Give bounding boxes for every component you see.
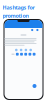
button[interactable]: Share <box>16 53 19 56</box>
button[interactable]: Share <box>20 53 23 56</box>
button[interactable]: Share <box>24 53 27 56</box>
button[interactable]: Add <box>32 84 36 88</box>
button[interactable]: Tag <box>29 49 32 51</box>
button[interactable]: Share <box>28 53 31 56</box>
button[interactable]: Search <box>31 29 33 31</box>
staticText: Hashtags for <box>2 4 34 11</box>
staticText: promotion <box>2 12 28 19</box>
button[interactable]: Tag <box>15 49 18 51</box>
button[interactable]: Filter <box>36 29 38 31</box>
button[interactable]: Share <box>33 53 35 56</box>
